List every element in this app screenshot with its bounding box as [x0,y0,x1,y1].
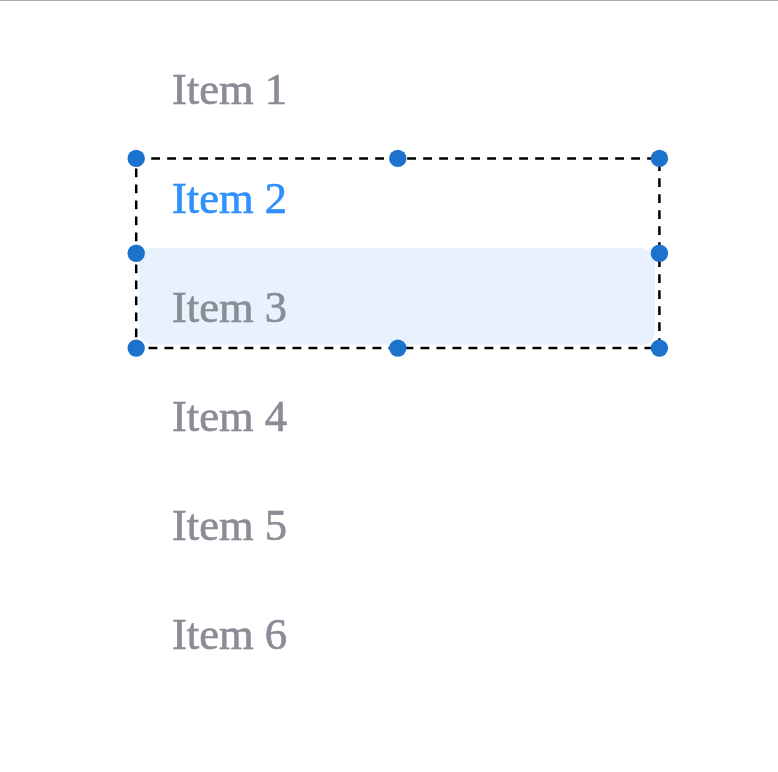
staticText: Item 3 [172,282,287,331]
staticText: Item 4 [172,391,287,440]
button[interactable]: Item 1 [0,0,778,173]
button[interactable]: Item 6 [0,609,778,718]
button[interactable]: Item 5 [0,500,778,609]
staticText: Item 5 [172,500,287,549]
staticText: Item 2 [172,173,287,222]
staticText: Item 6 [172,609,287,658]
staticText: Item 2 [172,173,287,222]
staticText: Item 3 [172,282,287,331]
staticText: Item 1 [172,64,287,113]
staticText: Item 6 [172,609,287,658]
staticText: Item 5 [172,500,287,549]
other: Selection frame around Item 2 and Item 3 [0,0,778,772]
button[interactable]: Item 3 [0,282,778,391]
button[interactable]: Item 2 [0,173,778,282]
button[interactable]: Item 4 [0,391,778,500]
staticText: Item 1 [172,64,287,113]
staticText: Item 4 [172,391,287,440]
